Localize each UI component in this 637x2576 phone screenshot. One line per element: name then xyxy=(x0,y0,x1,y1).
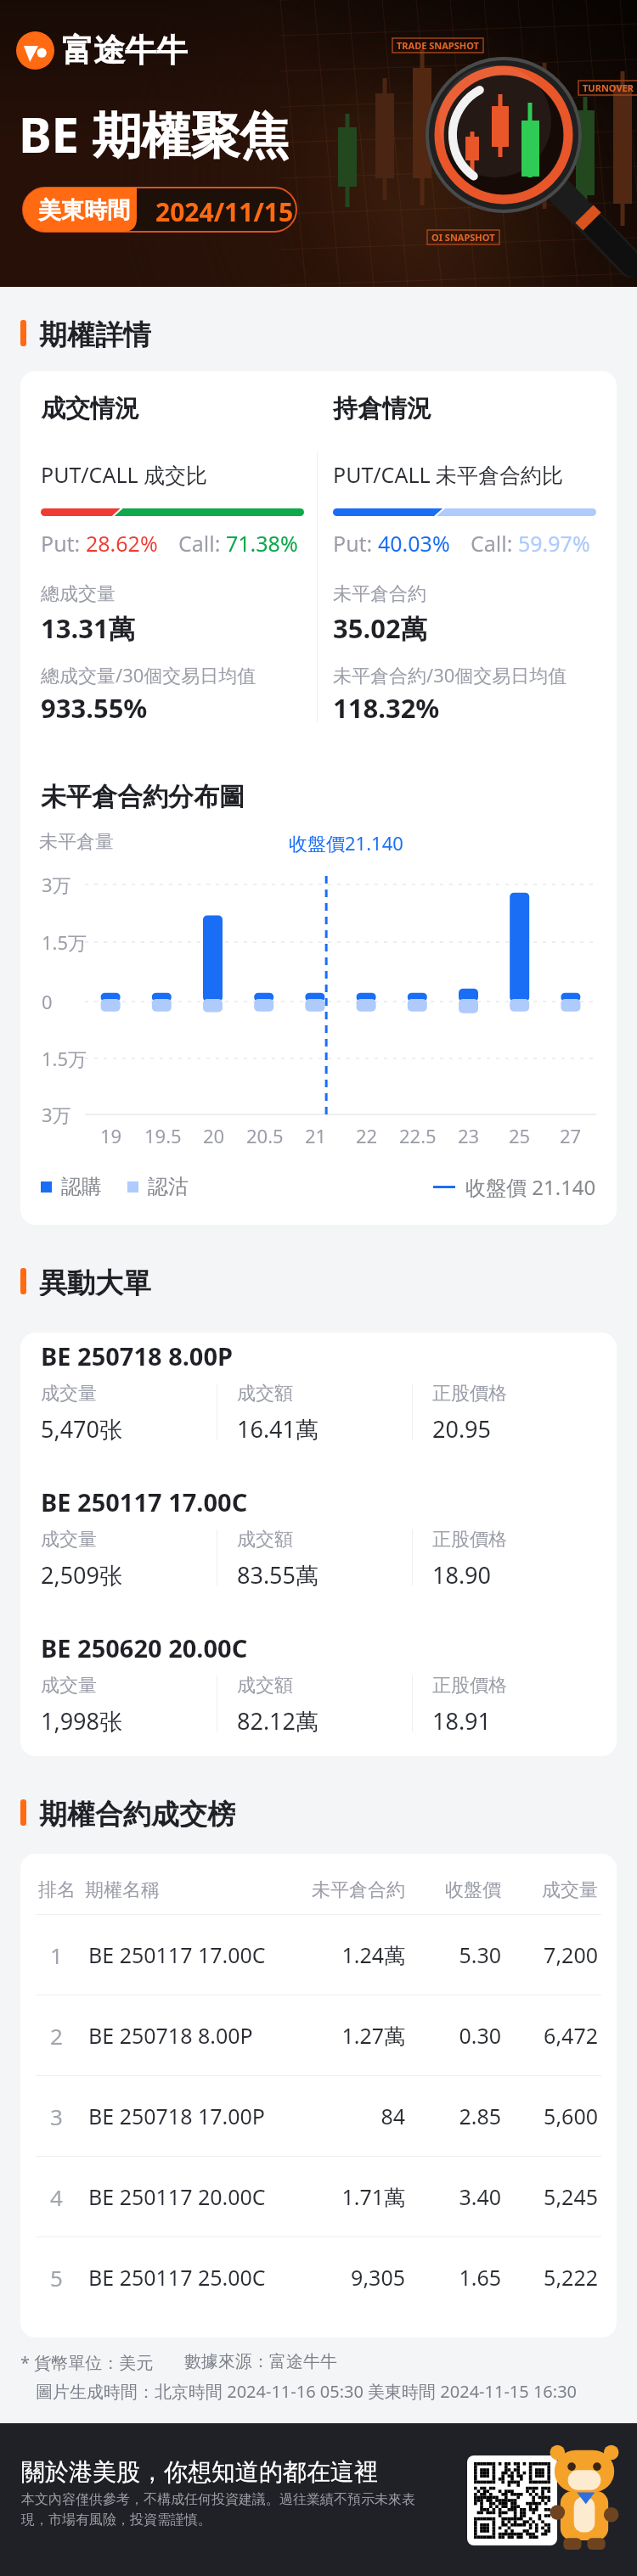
button[interactable]: 2 xyxy=(20,1995,617,2075)
staticText: PUT/CALL 成交比 xyxy=(41,460,208,489)
button[interactable]: 3 xyxy=(20,2076,617,2156)
staticText: 933.55% xyxy=(41,690,148,726)
staticText: 成交量 xyxy=(41,1528,97,1552)
staticText: 排名 xyxy=(38,1878,76,1902)
button[interactable]: BE 250718 8.00P xyxy=(20,1334,617,1470)
button[interactable]: 富途牛牛 xyxy=(16,31,188,70)
staticText: 22 xyxy=(356,1123,378,1148)
staticText: * 貨幣單位：美元 xyxy=(20,2351,154,2374)
staticText: 未平倉合約 xyxy=(312,1878,405,1902)
staticText: 71.38% xyxy=(226,529,298,558)
staticText: 總成交量 xyxy=(41,582,116,606)
staticText: Put: xyxy=(333,529,378,558)
staticText: 成交情況 xyxy=(41,393,139,424)
staticText: 3 xyxy=(50,2102,63,2131)
staticText: 3万 xyxy=(42,872,71,897)
staticText: 持倉情況 xyxy=(333,393,431,424)
button[interactable]: 認沽 xyxy=(127,1174,189,1199)
staticText: 5,470张 xyxy=(41,1413,123,1445)
button[interactable]: 美東時間 2024/11/15 xyxy=(23,188,296,232)
staticText: 118.32% xyxy=(333,690,440,726)
staticText: 3.40 xyxy=(459,2182,501,2211)
staticText: 收盤價21.140 xyxy=(289,830,403,856)
staticText: 20.95 xyxy=(432,1413,492,1445)
staticText: Put: xyxy=(41,529,86,558)
staticText: 5,600 xyxy=(544,2102,598,2130)
staticText: 7,200 xyxy=(544,1940,598,1969)
staticText: 1.27萬 xyxy=(341,2021,405,2050)
staticText: 1.5万 xyxy=(42,929,87,955)
staticText: 0.30 xyxy=(459,2021,501,2050)
staticText: BE 250117 25.00C xyxy=(88,2263,266,2292)
button[interactable]: 5 xyxy=(20,2237,617,2317)
button[interactable]: 1 xyxy=(20,1915,617,1995)
staticText: TURNOVER xyxy=(583,81,634,94)
staticText: 1 xyxy=(50,1940,63,1970)
staticText: 5 xyxy=(50,2263,63,2293)
staticText: 9,305 xyxy=(351,2263,405,2292)
staticText: 2024/11/15 xyxy=(155,194,294,229)
staticText: 35.02萬 xyxy=(333,610,427,646)
staticText: 1.65 xyxy=(459,2263,501,2292)
button[interactable]: 收盤價 21.140 xyxy=(433,1173,596,1201)
staticText: 成交額 xyxy=(237,1382,293,1406)
staticText: 19 xyxy=(100,1123,122,1148)
staticText: 1.24萬 xyxy=(341,1940,405,1969)
staticText: 84 xyxy=(381,2102,405,2130)
staticText: PUT/CALL 未平倉合約比 xyxy=(333,460,564,489)
staticText: 1.71萬 xyxy=(341,2182,405,2211)
staticText: 數據來源：富途牛牛 xyxy=(184,2351,337,2372)
button[interactable]: BE 250117 17.00C xyxy=(20,1480,617,1616)
staticText: 成交額 xyxy=(237,1674,293,1698)
staticText: 圖片生成時間：北京時間 2024-11-16 05:30 美東時間 2024-1… xyxy=(36,2380,578,2403)
staticText: 5,222 xyxy=(544,2263,598,2292)
staticText: 40.03% xyxy=(378,529,450,558)
staticText: BE 250718 8.00P xyxy=(41,1339,234,1372)
staticText: 0 xyxy=(42,989,53,1014)
staticText: BE 250718 8.00P xyxy=(88,2021,253,2050)
button[interactable]: 認購 xyxy=(41,1174,102,1199)
staticText: 收盤價 21.140 xyxy=(465,1173,596,1201)
staticText: 現，市場有風險，投資需謹慎。 xyxy=(21,2511,211,2528)
staticText: 未平倉量 xyxy=(39,830,114,854)
button[interactable]: 掃描二維碼下載富途牛牛 xyxy=(467,2455,557,2545)
staticText: 3万 xyxy=(42,1102,71,1127)
staticText: TRADE SNAPSHOT xyxy=(397,39,479,52)
staticText: 6,472 xyxy=(544,2021,598,2050)
staticText: 收盤價 xyxy=(445,1878,501,1902)
staticText: BE 250117 17.00C xyxy=(41,1485,248,1518)
staticText: 20 xyxy=(203,1123,225,1148)
staticText: 異動大單 xyxy=(39,1266,151,1296)
staticText: 期權詳情 xyxy=(39,317,151,348)
button[interactable]: BE 250620 20.00C xyxy=(20,1626,617,1756)
staticText: 正股價格 xyxy=(432,1674,507,1698)
staticText: 82.12萬 xyxy=(237,1705,319,1737)
staticText: 83.55萬 xyxy=(237,1559,319,1591)
staticText: 25 xyxy=(509,1123,531,1148)
staticText: 2,509张 xyxy=(41,1559,123,1591)
staticText: 正股價格 xyxy=(432,1382,507,1406)
staticText: 未平倉合約分布圖 xyxy=(41,781,245,813)
button[interactable]: 4 xyxy=(20,2157,617,2236)
staticText: 18.91 xyxy=(432,1705,492,1737)
staticText: 期權合約成交榜 xyxy=(39,1797,235,1827)
staticText: 未平倉合約 xyxy=(333,582,426,606)
staticText: 16.41萬 xyxy=(237,1413,319,1445)
staticText: BE 期權聚焦 xyxy=(19,100,290,167)
staticText: 19.5 xyxy=(144,1123,182,1148)
staticText: 富途牛牛 xyxy=(62,31,188,70)
staticText: 總成交量/30個交易日均值 xyxy=(41,662,256,687)
staticText: BE 250718 17.00P xyxy=(88,2102,265,2130)
staticText: BE 250620 20.00C xyxy=(41,1631,248,1664)
staticText: 成交量 xyxy=(41,1674,97,1698)
staticText: 1.5万 xyxy=(42,1046,87,1071)
staticText: 13.31萬 xyxy=(41,610,135,646)
staticText: 28.62% xyxy=(86,529,158,558)
staticText: Call: xyxy=(178,529,226,558)
staticText: 成交量 xyxy=(542,1878,598,1902)
staticText: 5.30 xyxy=(459,1940,501,1969)
staticText: 59.97% xyxy=(518,529,590,558)
staticText: 1,998张 xyxy=(41,1705,123,1737)
staticText: BE 250117 20.00C xyxy=(88,2182,266,2211)
staticText: 21 xyxy=(305,1123,327,1148)
